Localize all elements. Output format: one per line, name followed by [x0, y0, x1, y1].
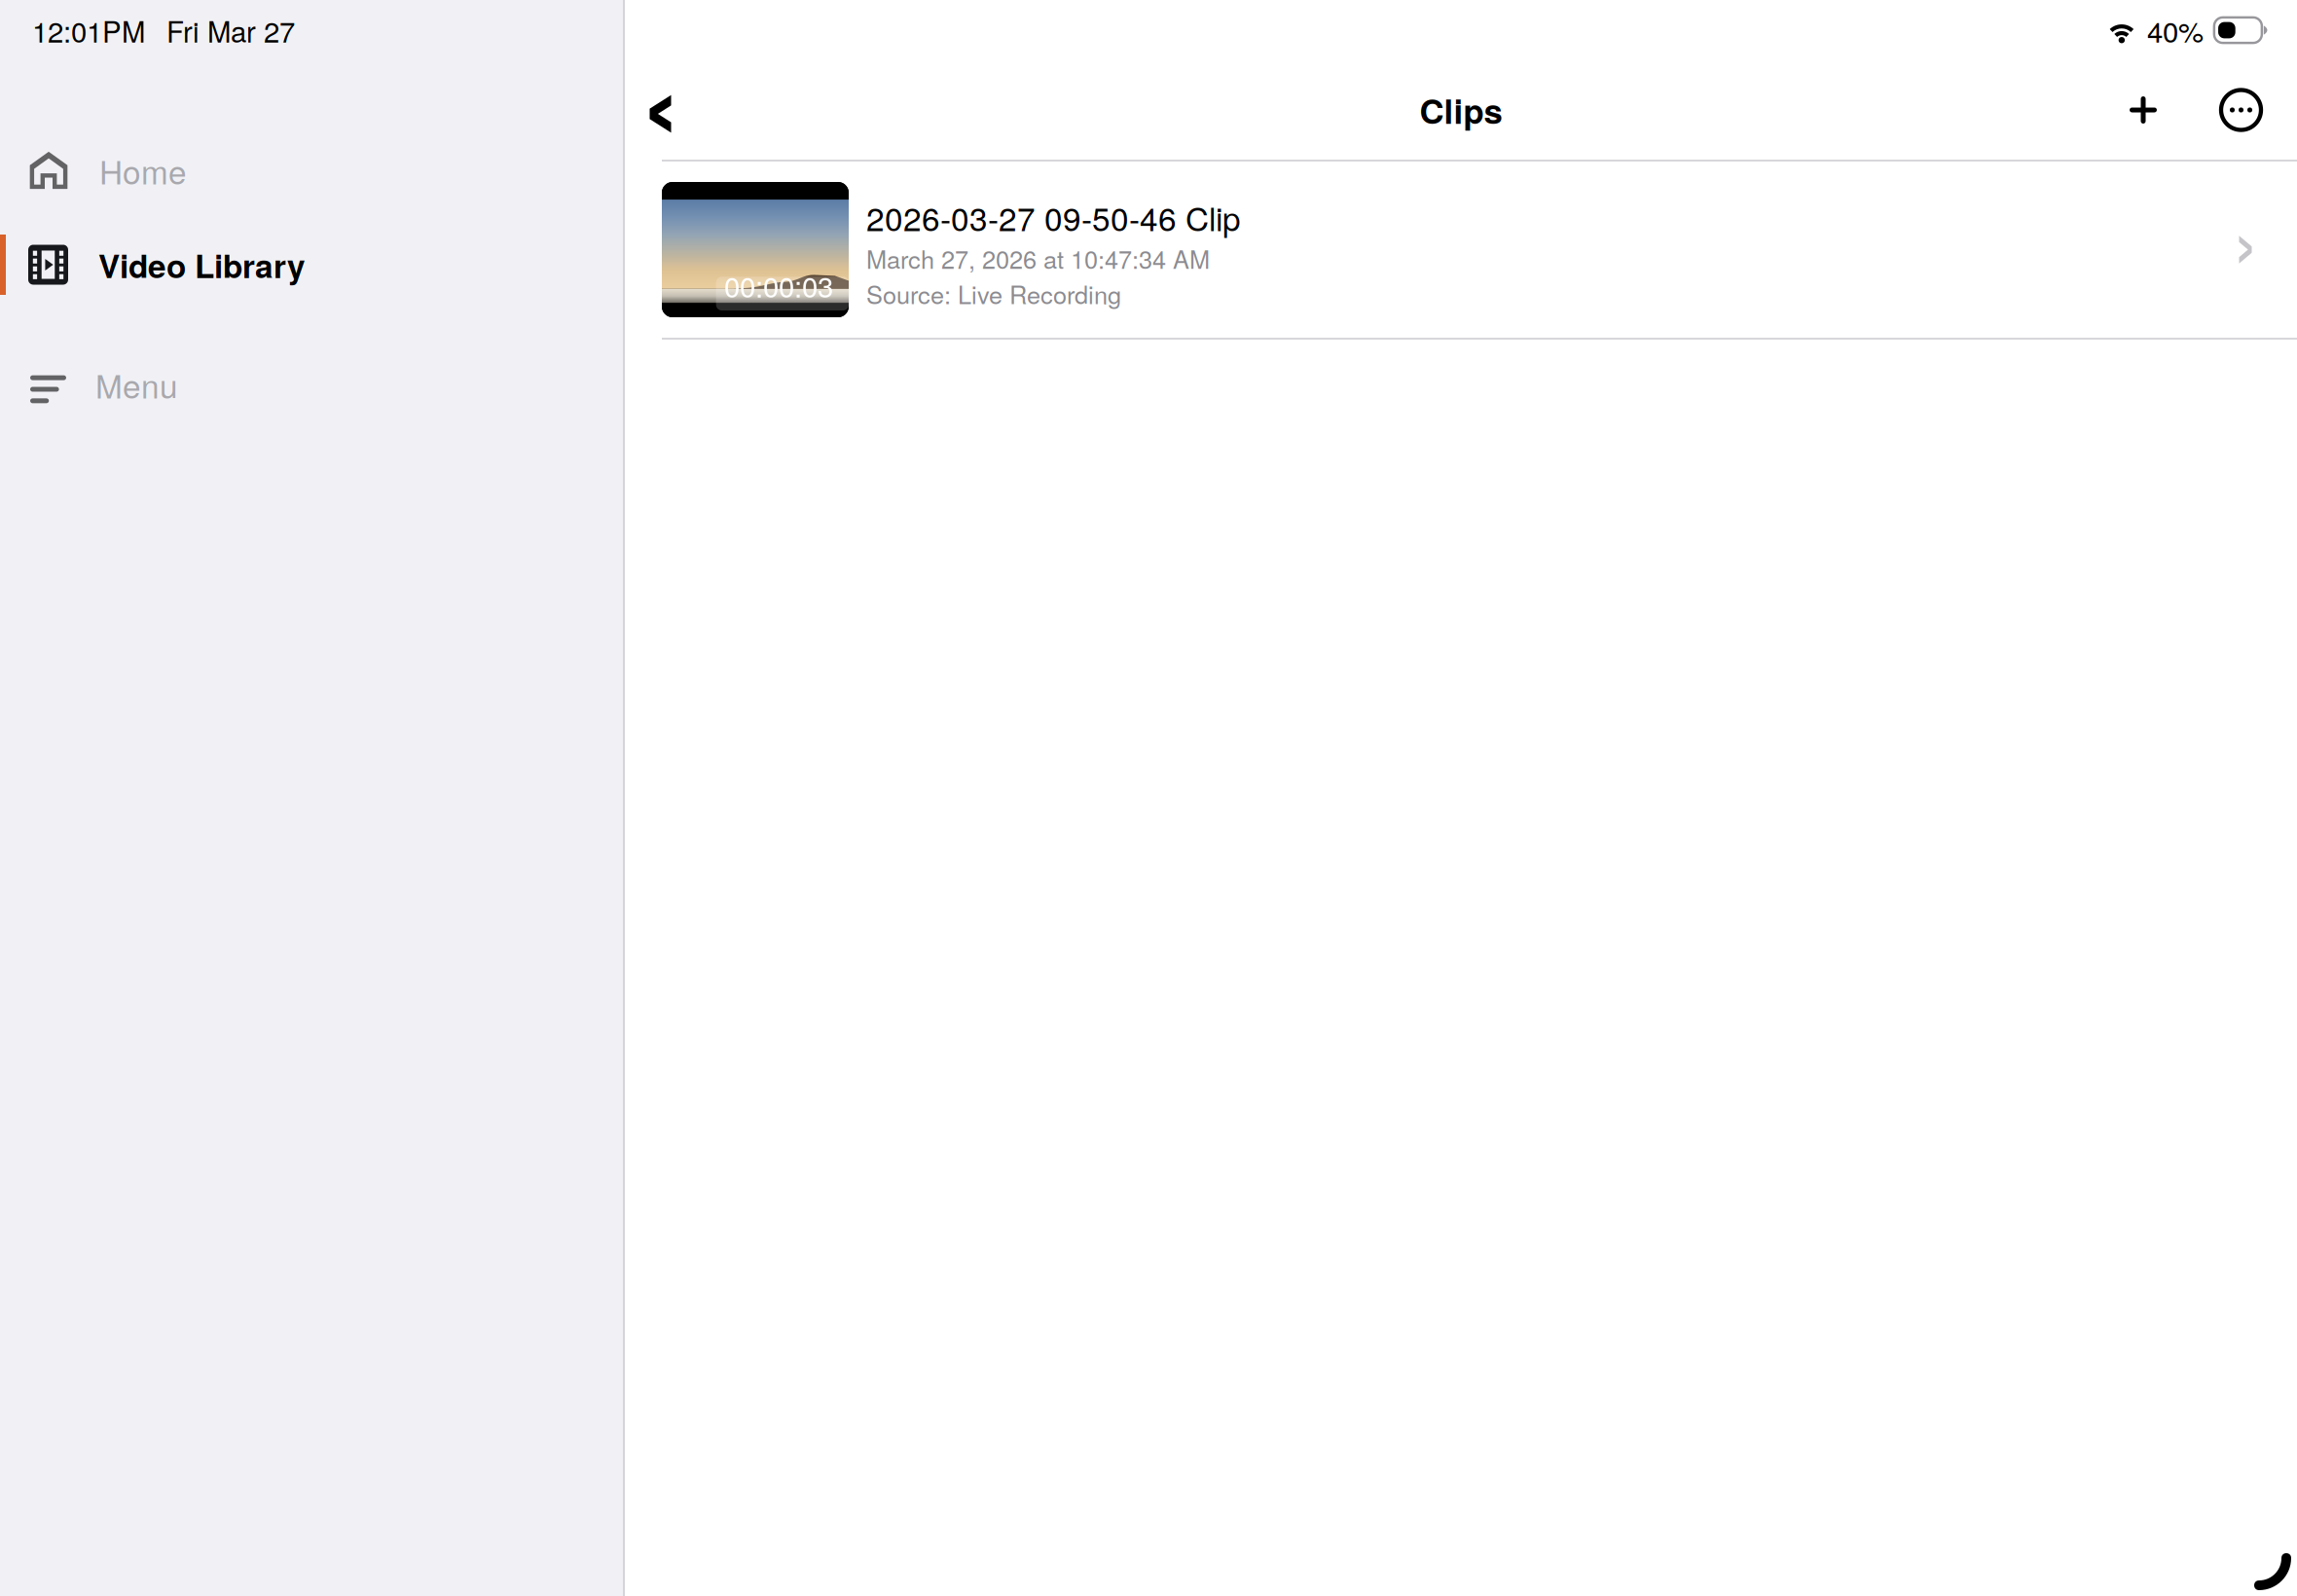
staticText: 2026-03-27 09-50-46 Clip [866, 194, 1241, 240]
staticText: March 27, 2026 at 10:47:34 AM [866, 240, 1210, 276]
button[interactable]: More options [2208, 77, 2283, 143]
button[interactable]: Menu [0, 368, 623, 411]
staticText: Source: Live Recording [866, 276, 1121, 311]
staticText: Clips [1420, 86, 1502, 134]
staticText: 00:00:03 [724, 265, 833, 306]
button[interactable]: Back [629, 77, 686, 143]
button[interactable]: Home [0, 149, 623, 192]
button[interactable]: Add clip [2102, 79, 2181, 141]
button[interactable]: Video Library [0, 235, 623, 295]
staticText: 40% [2147, 10, 2203, 51]
staticText: Home [99, 147, 187, 193]
staticText: 12:01PM [32, 10, 145, 51]
staticText: Menu [95, 361, 178, 408]
staticText: Fri Mar 27 [166, 10, 295, 51]
button[interactable]: 00:00:03 [625, 162, 2297, 338]
staticText: Video Library [98, 241, 306, 288]
